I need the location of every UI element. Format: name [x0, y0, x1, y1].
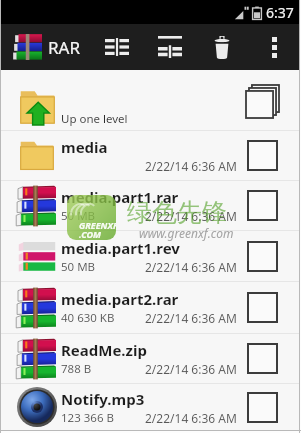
- staticText: RAR: [48, 36, 81, 59]
- staticText: 6:37: [266, 3, 294, 22]
- button[interactable]: Select: [239, 181, 286, 230]
- button[interactable]: Extract: [98, 24, 136, 70]
- staticText: media.part1.rar: [61, 187, 179, 207]
- button[interactable]: media.part1.rev: [1, 231, 299, 281]
- staticText: 123 366 B: [61, 410, 114, 426]
- button[interactable]: Select: [239, 282, 286, 333]
- staticText: 绿色先锋: [127, 197, 227, 228]
- staticText: 2/22/14 6:36 AM: [145, 310, 237, 326]
- button[interactable]: More options: [265, 24, 284, 70]
- staticText: media.part1.rev: [61, 238, 180, 258]
- staticText: 40 630 KB: [61, 310, 115, 326]
- staticText: www.greenxf.com: [139, 225, 234, 241]
- staticText: 50 MB: [61, 259, 96, 275]
- button[interactable]: Select: [239, 70, 286, 130]
- staticText: media.part2.rar: [61, 289, 179, 309]
- staticText: 2/22/14 6:36 AM: [145, 208, 237, 224]
- button[interactable]: ReadMe.zip: [1, 334, 299, 383]
- button[interactable]: media: [1, 131, 299, 180]
- staticText: Up one level: [61, 111, 128, 127]
- button[interactable]: media.part1.rar: [1, 181, 299, 230]
- staticText: media: [61, 137, 108, 157]
- button[interactable]: Select: [239, 384, 286, 430]
- button[interactable]: Up one level: [1, 70, 299, 130]
- button[interactable]: Delete: [207, 24, 237, 70]
- staticText: 50 MB: [61, 208, 96, 224]
- staticText: 2/22/14 6:36 AM: [145, 361, 237, 377]
- staticText: Notify.mp3: [61, 389, 145, 409]
- button[interactable]: Select: [239, 231, 286, 281]
- staticText: 2/22/14 6:36 AM: [145, 158, 237, 174]
- button[interactable]: Select: [239, 334, 286, 383]
- staticText: 2/22/14 6:36 AM: [145, 410, 237, 426]
- button[interactable]: Add to archive: [151, 24, 189, 70]
- button[interactable]: Notify.mp3: [1, 384, 299, 430]
- staticText: ReadMe.zip: [61, 340, 147, 360]
- staticText: 2/22/14 6:36 AM: [145, 259, 237, 275]
- staticText: GREENXF: [79, 219, 116, 231]
- button[interactable]: RAR: [1, 28, 91, 66]
- button[interactable]: media.part2.rar: [1, 282, 299, 333]
- staticText: 788 B: [61, 361, 92, 377]
- staticText: .COM: [79, 228, 101, 240]
- button[interactable]: Select: [239, 131, 286, 180]
